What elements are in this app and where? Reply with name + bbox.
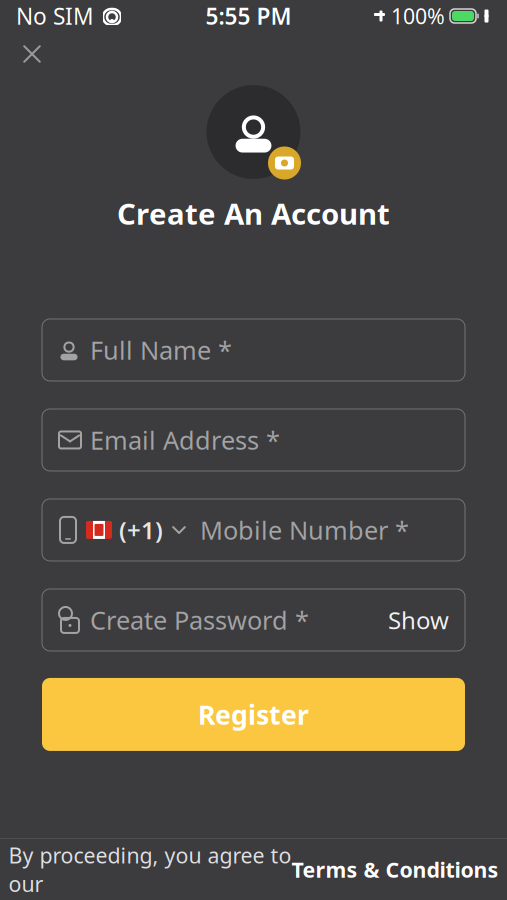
staticText: (+1) (119, 514, 163, 546)
staticText: Create Password * (90, 603, 309, 637)
staticText: Create An Account (117, 194, 390, 233)
staticText: By proceeding, you agree to our (8, 841, 291, 898)
staticText: Terms & Conditions (291, 855, 498, 884)
button[interactable]: (+1) (42, 499, 465, 561)
button[interactable]: Register (42, 678, 465, 751)
staticText: Mobile Number * (200, 513, 409, 547)
staticText: Full Name * (90, 333, 232, 367)
button[interactable]: Show (388, 604, 449, 636)
staticText: Register (198, 697, 309, 732)
staticText: 5:55 PM (205, 1, 291, 31)
button[interactable]: Email Address * (42, 409, 465, 471)
staticText: No SIM (16, 1, 94, 31)
button[interactable]: Create Password * (42, 589, 465, 651)
button[interactable]: Select country code (86, 514, 188, 546)
staticText: Email Address * (90, 423, 280, 457)
staticText: Show (388, 604, 449, 636)
staticText: 100% (391, 2, 445, 30)
button[interactable]: Full Name * (42, 319, 465, 381)
button[interactable]: Close (10, 32, 54, 76)
button[interactable]: By proceeding, you agree to our (0, 839, 507, 900)
button[interactable]: Change profile photo (203, 82, 303, 182)
